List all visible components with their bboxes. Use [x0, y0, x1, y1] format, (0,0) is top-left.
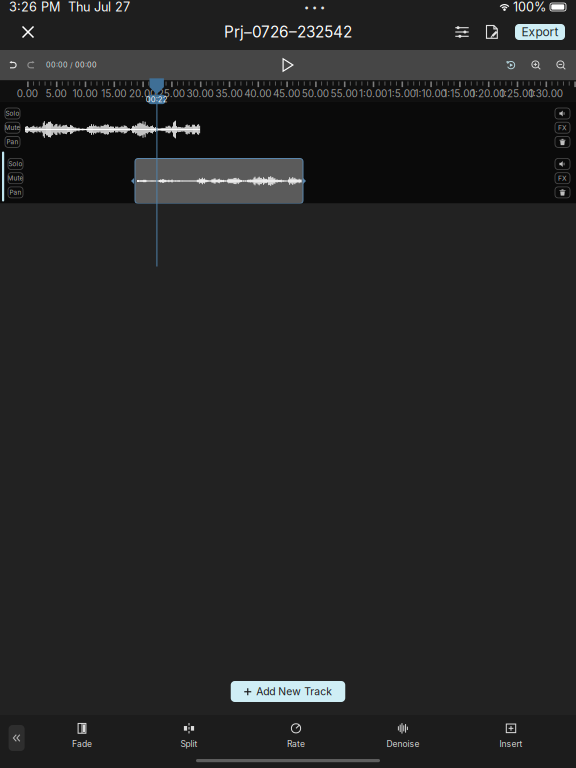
staticText: Fade — [72, 739, 92, 749]
button[interactable]: Volume — [555, 108, 570, 119]
staticText: 50.00 — [302, 87, 329, 100]
button[interactable]: Export — [515, 24, 565, 40]
staticText: 45.00 — [273, 87, 300, 100]
staticText: 55.00 — [331, 87, 358, 100]
button[interactable]: Insert — [476, 724, 546, 748]
staticText: 1:25.00 — [500, 87, 534, 100]
button[interactable]: Pan — [5, 136, 20, 147]
staticText: 5.00 — [46, 87, 67, 100]
staticText: 1:20.00 — [471, 87, 505, 100]
staticText: Insert — [499, 739, 522, 749]
staticText: Split — [180, 739, 197, 749]
button[interactable]: Add New Track — [231, 681, 345, 702]
staticText: 35.00 — [215, 87, 242, 100]
staticText: Denoise — [386, 739, 419, 749]
staticText: Rate — [287, 739, 305, 749]
button[interactable]: Collapse toolbar — [9, 725, 25, 751]
staticText: Export — [521, 25, 558, 39]
staticText: FX — [558, 174, 567, 182]
staticText: 3:26 PM — [9, 0, 60, 15]
staticText: Thu Jul 27 — [68, 0, 130, 15]
staticText: Mute — [4, 124, 20, 131]
staticText: 1:30.00 — [529, 87, 563, 100]
staticText: 40.00 — [244, 87, 271, 100]
staticText: 1:10.00 — [414, 87, 446, 100]
button[interactable]: Close — [11, 15, 45, 49]
staticText: Solo — [5, 110, 19, 117]
button[interactable]: Mixer settings — [450, 17, 474, 47]
staticText: 00:00 — [46, 61, 68, 69]
button[interactable]: Volume — [555, 158, 570, 169]
staticText: 25.00 — [158, 87, 185, 100]
button[interactable]: Denoise — [368, 724, 438, 748]
staticText: 1:15.00 — [443, 87, 475, 100]
staticText: / — [68, 61, 75, 69]
button[interactable]: Solo — [5, 108, 20, 119]
staticText: 00:22 — [146, 95, 168, 104]
button[interactable]: Undo — [4, 52, 22, 78]
staticText: FX — [558, 124, 567, 132]
staticText: Pan — [6, 138, 18, 146]
staticText: 30.00 — [187, 87, 214, 100]
staticText: 10.00 — [72, 87, 97, 100]
button[interactable]: Solo — [8, 158, 23, 169]
button[interactable]: Redo — [22, 52, 40, 78]
button[interactable]: Split — [154, 724, 224, 748]
staticText: Prj–0726–232542 — [224, 23, 352, 41]
staticText: 15.00 — [101, 87, 126, 100]
button[interactable]: Mute — [5, 122, 20, 133]
button[interactable]: Effects — [555, 122, 570, 133]
staticText: 20.00 — [129, 87, 156, 100]
button[interactable]: Mute — [8, 173, 23, 184]
staticText: Add New Track — [256, 685, 332, 698]
button[interactable]: Rate — [261, 724, 331, 748]
staticText: • • • — [304, 1, 325, 13]
button[interactable]: Zoom out — [550, 52, 572, 78]
button[interactable]: Zoom in — [525, 52, 547, 78]
button[interactable]: Restart playback — [500, 52, 522, 78]
button[interactable]: Rename project — [480, 17, 504, 47]
staticText: Mute — [7, 174, 23, 182]
staticText: 00:00 — [75, 61, 97, 69]
button[interactable]: Delete track — [555, 187, 570, 198]
button[interactable]: Effects — [555, 173, 570, 184]
button[interactable]: Pan — [8, 187, 23, 198]
staticText: 1:0.00 — [359, 87, 387, 100]
button[interactable]: Fade — [47, 724, 117, 748]
staticText: 1:5.00 — [388, 87, 416, 100]
button[interactable]: Play — [274, 52, 302, 78]
button[interactable]: Delete track — [555, 136, 570, 147]
staticText: 100% — [513, 0, 546, 15]
staticText: Solo — [8, 160, 22, 168]
staticText: Pan — [9, 188, 21, 196]
staticText: 0.00 — [17, 87, 38, 100]
